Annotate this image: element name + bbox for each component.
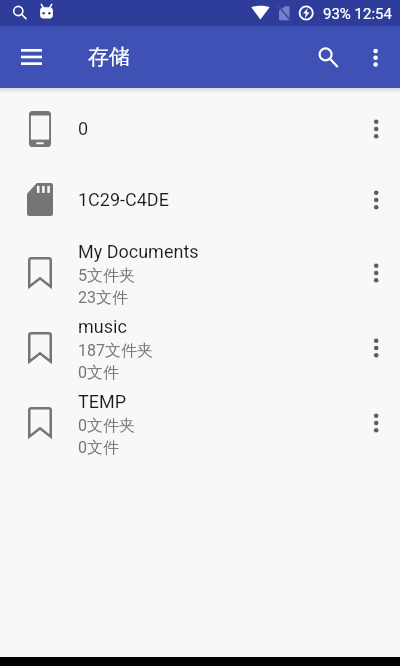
staticText: 存储 [88, 44, 130, 70]
staticText: 0文件 [78, 363, 119, 383]
button[interactable]: TEMP [0, 385, 400, 460]
button[interactable]: Open navigation menu [5, 31, 57, 83]
staticText: 187文件夹 [78, 341, 153, 361]
button[interactable]: More options [350, 175, 400, 225]
staticText: 1C29-C4DE [78, 189, 169, 210]
staticText: 93% 12:54 [323, 5, 392, 23]
staticText: 0文件夹 [78, 416, 135, 436]
button[interactable]: music [0, 310, 400, 385]
button[interactable]: My Documents [0, 235, 400, 310]
button[interactable]: 1C29-C4DE [0, 164, 400, 235]
button[interactable]: More options [354, 35, 398, 79]
staticText: TEMP [78, 391, 127, 412]
staticText: My Documents [78, 241, 199, 262]
staticText: 0文件 [78, 438, 119, 458]
button[interactable]: 0 [0, 93, 400, 164]
staticText: 5文件夹 [78, 266, 135, 286]
button[interactable]: More options [350, 323, 400, 373]
staticText: 0 [78, 118, 89, 139]
button[interactable]: Search [302, 33, 350, 81]
button[interactable]: More options [350, 104, 400, 154]
button[interactable]: More options [350, 248, 400, 298]
staticText: music [78, 316, 127, 337]
button[interactable]: More options [350, 398, 400, 448]
staticText: 23文件 [78, 288, 128, 308]
